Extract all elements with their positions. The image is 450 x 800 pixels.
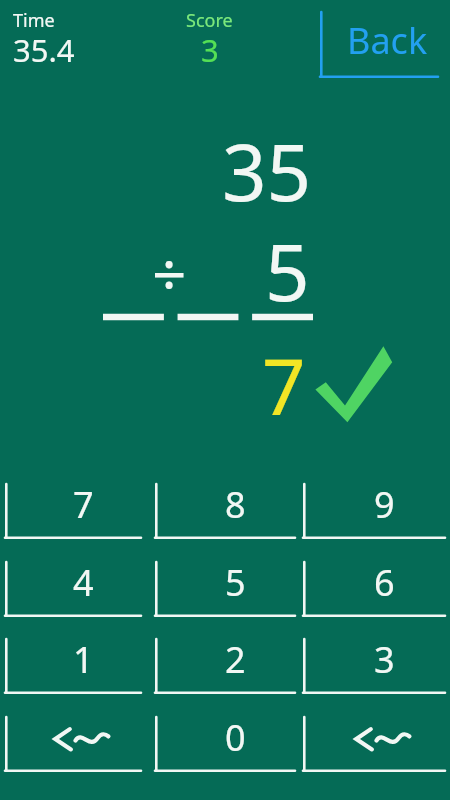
button[interactable]: 2 bbox=[155, 639, 295, 694]
button[interactable]: 0 bbox=[155, 717, 295, 772]
staticText: Time bbox=[13, 8, 55, 33]
staticText: 4 bbox=[73, 558, 94, 607]
staticText: 2 bbox=[225, 635, 246, 684]
button[interactable]: 3 bbox=[303, 639, 445, 694]
staticText: 6 bbox=[374, 558, 395, 607]
staticText: 3 bbox=[201, 29, 219, 71]
staticText: 7 bbox=[73, 480, 94, 529]
staticText: 3 bbox=[374, 635, 395, 684]
button[interactable]: 1 bbox=[5, 639, 141, 694]
button[interactable]: 6 bbox=[303, 562, 445, 617]
staticText: 5 bbox=[225, 558, 246, 607]
staticText: ÷ bbox=[152, 232, 187, 314]
staticText: 7 bbox=[262, 334, 306, 438]
button[interactable]: 5 bbox=[155, 562, 295, 617]
staticText: 35 bbox=[222, 118, 312, 218]
staticText: Back bbox=[347, 16, 428, 65]
button[interactable]: Backspace bbox=[5, 717, 141, 772]
staticText: 35.4 bbox=[13, 29, 75, 71]
button[interactable]: Backspace bbox=[303, 717, 445, 772]
staticText: 9 bbox=[374, 480, 395, 529]
button[interactable]: 9 bbox=[303, 484, 445, 539]
staticText: 1 bbox=[73, 635, 94, 684]
button[interactable]: 7 bbox=[5, 484, 141, 539]
button[interactable]: Back bbox=[320, 12, 438, 78]
button[interactable]: 8 bbox=[155, 484, 295, 539]
staticText: Score bbox=[186, 8, 233, 33]
staticText: 8 bbox=[225, 480, 246, 529]
staticText: 0 bbox=[225, 713, 246, 762]
staticText: 5 bbox=[265, 218, 310, 318]
button[interactable]: 4 bbox=[5, 562, 141, 617]
